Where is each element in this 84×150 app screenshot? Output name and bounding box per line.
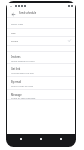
staticText: Invitees xyxy=(11,55,21,58)
staticText: Share by text message xyxy=(11,97,36,100)
button[interactable] xyxy=(7,63,75,76)
button[interactable]: Back xyxy=(9,10,17,18)
staticText: Only xyxy=(11,32,16,35)
staticText: Message xyxy=(11,93,22,96)
button[interactable] xyxy=(7,89,75,102)
button[interactable] xyxy=(7,17,75,28)
button[interactable] xyxy=(7,28,75,37)
button[interactable] xyxy=(7,76,75,89)
staticText: Send a copy by mail xyxy=(11,84,34,87)
staticText: Invite people to class xyxy=(11,59,35,62)
staticText: School xyxy=(11,40,19,43)
staticText: Get link xyxy=(11,67,21,70)
button[interactable] xyxy=(7,36,75,45)
staticText: By email xyxy=(11,80,22,83)
button[interactable] xyxy=(7,51,75,64)
staticText: Anyone with the link xyxy=(11,71,34,74)
staticText: Select class xyxy=(11,23,24,26)
staticText: Send schedule xyxy=(19,11,37,14)
